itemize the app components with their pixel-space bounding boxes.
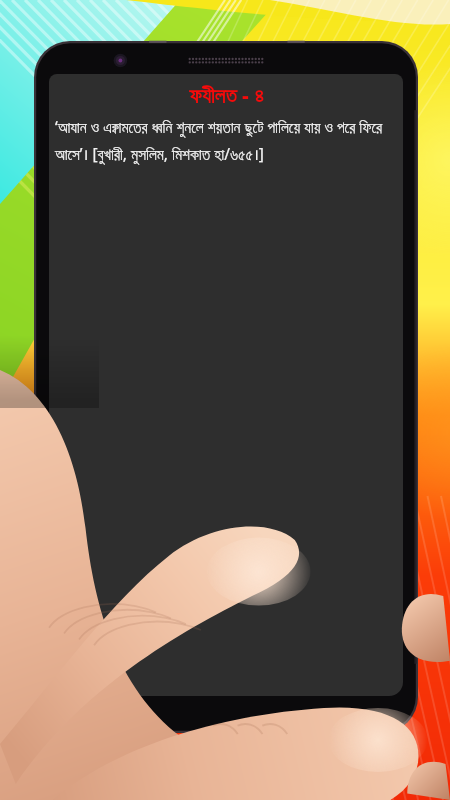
staticText: ফযীলত - ৪ <box>189 81 264 110</box>
button[interactable]: ফযীলত - ৪ <box>49 74 403 116</box>
button[interactable]: ‘আযান ও এক্বামতের ধ্বনি শুনলে শয়তান ছুট… <box>55 116 395 165</box>
other: Hand holding phone <box>0 0 450 800</box>
staticText: ‘আযান ও এক্বামতের ধ্বনি শুনলে শয়তান ছুট… <box>55 116 395 165</box>
